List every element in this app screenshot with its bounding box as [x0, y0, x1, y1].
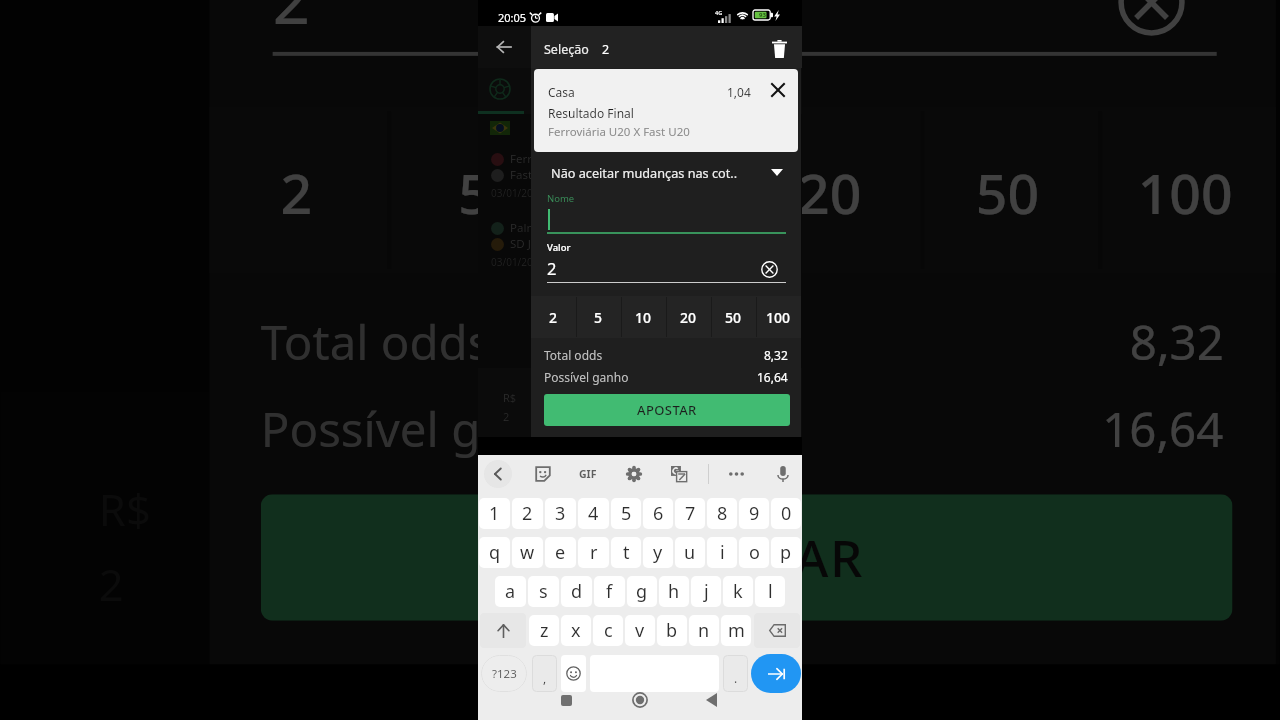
button[interactable]: Remove selection — [767, 79, 789, 101]
staticText: Total odds — [544, 347, 603, 363]
staticText: 1 — [489, 501, 500, 526]
staticText: Palm — [510, 220, 538, 236]
staticText: x — [571, 618, 581, 643]
button[interactable]: 7 — [675, 498, 705, 529]
button[interactable]: APOSTAR — [261, 494, 1232, 621]
staticText: j — [704, 579, 709, 604]
button[interactable]: 10 — [565, 107, 743, 273]
button[interactable]: GIF — [572, 458, 604, 490]
button[interactable]: 20 — [743, 107, 920, 273]
button[interactable]: l — [755, 576, 785, 607]
button[interactable]: APOSTAR — [544, 394, 790, 426]
button[interactable]: Backspace — [754, 613, 800, 648]
button[interactable]: Recents — [551, 685, 581, 715]
button[interactable]: 5 — [611, 498, 641, 529]
button[interactable]: a — [495, 576, 526, 607]
button[interactable]: Home — [625, 685, 655, 715]
button[interactable]: 5 — [387, 107, 565, 273]
button[interactable]: Não aceitar mudanças nas cot.. — [539, 156, 801, 188]
button[interactable]: n — [689, 615, 719, 646]
button[interactable]: w — [512, 537, 543, 568]
button[interactable]: d — [561, 576, 592, 607]
button[interactable]: i — [707, 537, 737, 568]
button[interactable]: 100 — [756, 296, 801, 338]
button[interactable]: r — [578, 537, 609, 568]
button[interactable]: 6 — [643, 498, 673, 529]
button[interactable]: 2 — [209, 107, 387, 273]
button[interactable]: ?123 — [481, 655, 527, 692]
button[interactable]: , — [532, 655, 557, 692]
button[interactable]: Back — [480, 26, 527, 68]
button[interactable]: t — [611, 537, 641, 568]
button[interactable]: b — [657, 615, 687, 646]
button[interactable]: v — [625, 615, 655, 646]
button[interactable]: o — [739, 537, 769, 568]
button[interactable]: s — [528, 576, 559, 607]
staticText: 0 — [781, 501, 792, 526]
button[interactable]: h — [659, 576, 689, 607]
button[interactable]: Settings — [618, 458, 650, 490]
staticText: 10 — [635, 308, 652, 327]
staticText: o — [749, 540, 760, 565]
button[interactable]: 8 — [707, 498, 737, 529]
button[interactable]: 20 — [666, 296, 711, 338]
button[interactable]: Voice input — [767, 458, 799, 490]
staticText: . — [734, 670, 738, 686]
button[interactable]: 0 — [771, 498, 801, 529]
staticText: t — [623, 540, 630, 565]
button[interactable]: Enter — [751, 654, 801, 693]
staticText: 5 — [621, 501, 632, 526]
staticText: e — [555, 540, 566, 565]
button[interactable]: . — [723, 655, 748, 692]
staticText: 4 — [588, 501, 599, 526]
button[interactable]: Delete — [757, 28, 801, 70]
button[interactable]: e — [545, 537, 576, 568]
staticText: 2 — [503, 409, 510, 424]
button[interactable]: Back — [696, 685, 726, 715]
button[interactable]: 10 — [621, 296, 666, 338]
button[interactable]: Translate — [663, 458, 695, 490]
staticText: c — [604, 618, 613, 643]
button[interactable]: Shift — [480, 613, 526, 648]
button[interactable]: x — [561, 615, 591, 646]
button[interactable]: 4 — [578, 498, 609, 529]
button[interactable]: z — [529, 615, 559, 646]
staticText: 4G — [715, 9, 723, 16]
button[interactable]: f — [594, 576, 625, 607]
button[interactable]: u — [675, 537, 705, 568]
button[interactable]: Back — [482, 458, 514, 490]
button[interactable]: Clear value — [756, 256, 782, 282]
button[interactable]: 5 — [576, 296, 621, 338]
button[interactable]: 2 — [531, 296, 576, 338]
button[interactable]: m — [721, 615, 751, 646]
button[interactable]: Clear value — [1098, 0, 1201, 52]
button[interactable]: j — [691, 576, 721, 607]
button[interactable]: y — [643, 537, 673, 568]
button[interactable]: p — [771, 537, 801, 568]
button[interactable]: g — [627, 576, 657, 607]
button[interactable]: Stickers — [527, 458, 559, 490]
staticText: 7 — [685, 501, 696, 526]
button[interactable]: 2 — [512, 498, 543, 529]
button[interactable]: k — [723, 576, 753, 607]
button[interactable]: More options — [720, 458, 752, 490]
staticText: n — [698, 618, 710, 643]
button[interactable]: Emoji — [561, 655, 586, 692]
staticText: f — [606, 579, 613, 604]
staticText: Seleção — [544, 41, 589, 58]
staticText: Fast — [510, 167, 533, 183]
button[interactable]: 100 — [1098, 107, 1276, 273]
button[interactable]: 1 — [479, 498, 510, 529]
button[interactable]: 50 — [920, 107, 1098, 273]
button[interactable]: c — [593, 615, 623, 646]
staticText: 2 — [273, 0, 312, 40]
staticText: d — [571, 579, 583, 604]
button[interactable]: Casa — [534, 69, 798, 152]
button[interactable]: 50 — [711, 296, 756, 338]
button[interactable]: 3 — [545, 498, 576, 529]
button[interactable]: 9 — [739, 498, 769, 529]
button[interactable]: q — [479, 537, 510, 568]
staticText: 03/01/2022 — [491, 255, 545, 269]
